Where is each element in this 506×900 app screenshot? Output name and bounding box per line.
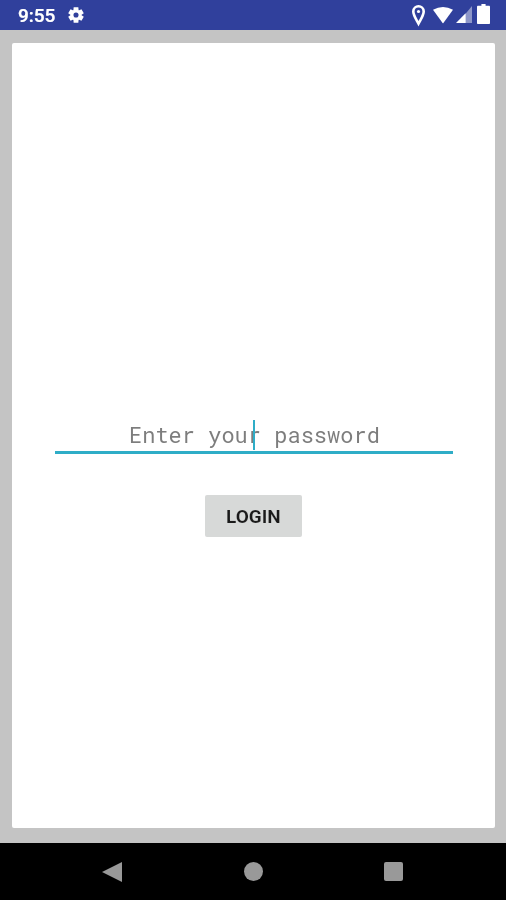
button[interactable]: Recents [363,843,423,900]
staticText: Enter your password [129,420,380,449]
button[interactable]: Back [82,843,142,900]
staticText: 9:55 [18,4,56,26]
button[interactable]: LOGIN [205,495,302,537]
button[interactable]: Enter your password [55,404,453,454]
staticText: LOGIN [226,505,281,527]
button[interactable]: Home [223,843,283,900]
